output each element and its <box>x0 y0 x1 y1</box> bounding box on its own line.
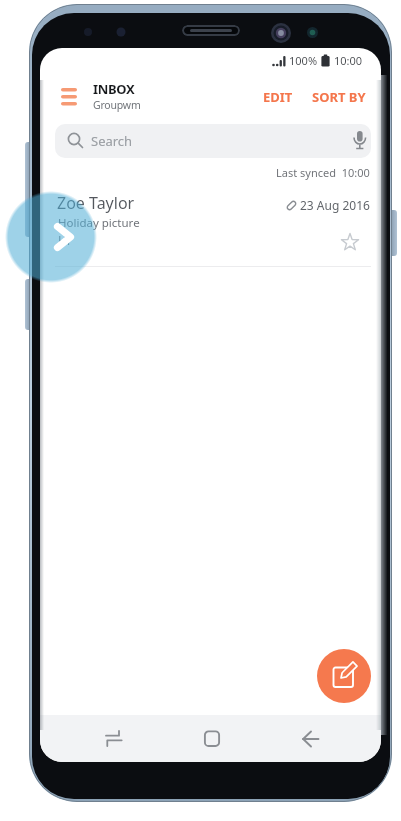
button[interactable] <box>317 649 371 703</box>
button[interactable]: EDIT <box>263 88 293 106</box>
button[interactable]: Search <box>55 124 371 158</box>
button[interactable]: Zoe Taylor <box>40 188 381 266</box>
staticText: Groupwm <box>93 98 141 112</box>
staticText: INBOX <box>93 80 135 98</box>
button[interactable] <box>50 78 88 116</box>
staticText: 10:00 <box>334 53 363 68</box>
staticText: 23 Aug 2016 <box>300 197 370 213</box>
staticText: Hi <box>58 232 70 248</box>
staticText: SORT BY <box>312 88 366 106</box>
staticText: Zoe Taylor <box>57 192 135 214</box>
button[interactable] <box>192 715 232 762</box>
staticText: 100% <box>289 53 318 68</box>
button[interactable] <box>5 191 97 283</box>
button[interactable] <box>290 715 330 762</box>
staticText: Last synced 10:00 <box>276 165 370 180</box>
staticText: EDIT <box>263 88 293 106</box>
button[interactable]: SORT BY <box>312 88 366 106</box>
staticText: Search <box>91 132 133 150</box>
staticText: Holiday picture <box>58 215 140 231</box>
button[interactable] <box>94 715 134 762</box>
